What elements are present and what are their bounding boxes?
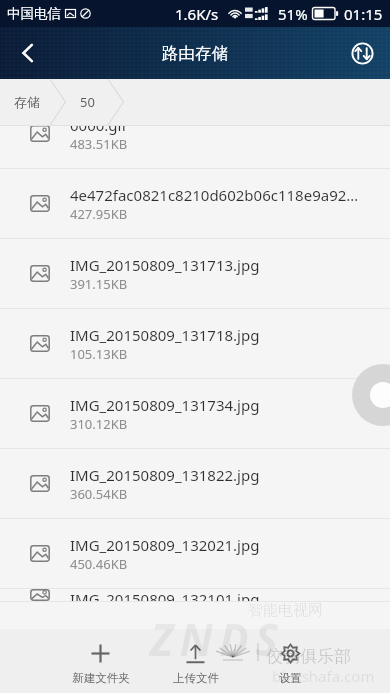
staticText: 105.13KB	[70, 345, 128, 363]
staticText: 设置	[279, 671, 302, 685]
button[interactable]: 新建文件夹	[53, 629, 148, 693]
button[interactable]: IMG_20150809_131713.jpg	[0, 239, 390, 309]
button[interactable]: 4e472fac0821c8210d602b06c118e9a92…	[0, 169, 390, 239]
staticText: IMG_20150809_131713.jpg	[70, 255, 260, 275]
staticText: 上传文件	[173, 671, 219, 685]
staticText: 450.46KB	[70, 555, 128, 573]
staticText: IMG_20150809_131822.jpg	[70, 465, 260, 485]
button[interactable]: IMG_20150809_131822.jpg	[0, 449, 390, 519]
staticText: 中国电信	[7, 5, 61, 22]
staticText: 1.6K/s	[175, 4, 219, 24]
staticText: 佼勃俱乐部	[266, 646, 351, 667]
button[interactable]: 0000.gif	[0, 126, 390, 169]
button[interactable]: Back	[0, 27, 56, 79]
button[interactable]: IMG_20150809_131718.jpg	[0, 309, 390, 379]
staticText: 01:15	[344, 4, 383, 24]
button[interactable]: Transfer	[334, 27, 390, 79]
button[interactable]: 设置	[243, 629, 338, 693]
staticText: 4e472fac0821c8210d602b06c118e9a92…	[70, 185, 359, 205]
button[interactable]: IMG_20150809_132101.jpg	[0, 589, 390, 602]
staticText: 427.95KB	[70, 205, 128, 223]
staticText: 310.12KB	[70, 415, 128, 433]
staticText: 新建文件夹	[72, 671, 130, 685]
staticText: 路由存储	[162, 43, 228, 64]
staticText: ZNDS	[150, 609, 285, 669]
staticText: bbs.shafa.com	[272, 666, 375, 686]
staticText: IMG_20150809_132101.jpg	[70, 589, 260, 601]
button[interactable]: 50	[80, 93, 95, 111]
button[interactable]: IMG_20150809_132021.jpg	[0, 519, 390, 589]
staticText: 391.15KB	[70, 275, 128, 293]
staticText: IMG_20150809_131718.jpg	[70, 325, 260, 345]
button[interactable]: 存储	[14, 94, 40, 110]
staticText: 0000.gif	[70, 126, 127, 135]
button[interactable]: 上传文件	[148, 629, 243, 693]
staticText: 51%	[278, 4, 308, 24]
staticText: IMG_20150809_131734.jpg	[70, 395, 260, 415]
staticText: 智能电视网	[248, 601, 323, 620]
button[interactable]: IMG_20150809_131734.jpg	[0, 379, 390, 449]
staticText: 360.54KB	[70, 485, 128, 503]
staticText: 483.51KB	[70, 135, 128, 153]
staticText: IMG_20150809_132021.jpg	[70, 535, 260, 555]
